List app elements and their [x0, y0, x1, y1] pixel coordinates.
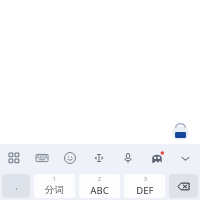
- staticText: DEF: [136, 184, 154, 197]
- button[interactable]: Emoji: [56, 144, 84, 172]
- button[interactable]: Hide keyboard: [171, 144, 200, 172]
- button[interactable]: Comma: [2, 174, 30, 198]
- button[interactable]: Voice input: [113, 144, 142, 172]
- button[interactable]: Keyboard layout: [28, 144, 56, 172]
- staticText: 2: [98, 176, 101, 183]
- button[interactable]: 3: [124, 174, 165, 198]
- staticText: 1: [53, 176, 56, 183]
- staticText: ABC: [90, 184, 109, 197]
- button[interactable]: Keyboard switcher: [0, 144, 28, 172]
- button[interactable]: AI assistant: [142, 144, 171, 172]
- staticText: 分词: [45, 184, 64, 196]
- staticText: 3: [144, 176, 147, 183]
- button[interactable]: Text editing: [84, 144, 113, 172]
- button[interactable]: Backspace: [169, 174, 198, 198]
- button[interactable]: 1: [34, 174, 75, 198]
- button[interactable]: Assistant bubble: [170, 122, 191, 143]
- button[interactable]: 2: [79, 174, 120, 198]
- staticText: ，: [13, 182, 20, 191]
